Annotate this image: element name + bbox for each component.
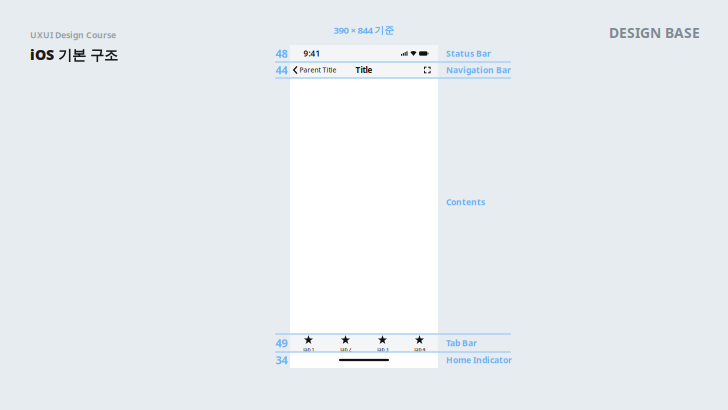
staticText: Navigation Bar bbox=[446, 64, 511, 76]
staticText: Title bbox=[355, 65, 372, 75]
button[interactable]: Tab 1 bbox=[290, 334, 327, 352]
staticText: 48 bbox=[275, 46, 287, 61]
staticText: 34 bbox=[275, 353, 287, 367]
staticText: Tab Bar bbox=[446, 337, 477, 349]
button[interactable]: Tab 2 bbox=[327, 334, 364, 352]
staticText: DESIGN BASE bbox=[609, 23, 700, 42]
staticText: Parent Title bbox=[300, 66, 337, 74]
staticText: Tab 2 bbox=[339, 346, 351, 353]
staticText: 49 bbox=[275, 336, 287, 350]
button[interactable]: Tab 4 bbox=[401, 334, 438, 352]
staticText: Tab 3 bbox=[376, 346, 388, 353]
staticText: Tab 1 bbox=[302, 346, 314, 353]
staticText: Status Bar bbox=[446, 48, 491, 59]
button[interactable]: Parent Title bbox=[293, 66, 337, 74]
staticText: Tab 4 bbox=[413, 346, 425, 353]
staticText: UXUI Design Course bbox=[30, 29, 116, 41]
staticText: Home Indicator bbox=[446, 354, 512, 366]
staticText: 44 bbox=[275, 63, 287, 77]
staticText: iOS 기본 구조 bbox=[30, 45, 118, 64]
staticText: 9:41 bbox=[303, 48, 320, 59]
staticText: Contents bbox=[446, 196, 485, 208]
button[interactable]: More bbox=[424, 67, 431, 73]
staticText: 390 × 844 기준 bbox=[333, 23, 394, 37]
button[interactable]: Tab 3 bbox=[364, 334, 401, 352]
